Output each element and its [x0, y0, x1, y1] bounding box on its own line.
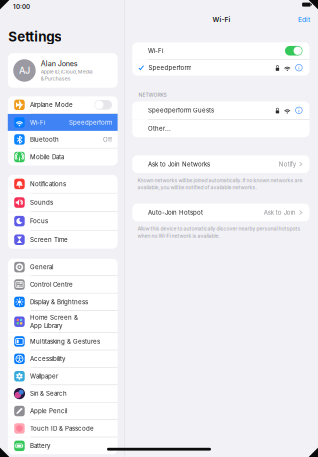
- button[interactable]: Wallpaper: [8, 368, 118, 385]
- button[interactable]: Apple Pencil: [8, 403, 118, 419]
- button[interactable]: Wi-Fi: [132, 42, 309, 59]
- button[interactable]: Focus: [8, 212, 118, 230]
- staticText: Wi-Fi: [148, 47, 163, 54]
- button[interactable]: Display & Brightness: [8, 293, 118, 310]
- button[interactable]: Battery: [8, 437, 118, 454]
- staticText: Mobile Data: [30, 153, 64, 161]
- button[interactable]: Screen Time: [8, 231, 118, 249]
- button[interactable]: Mobile Data: [8, 148, 118, 165]
- staticText: Focus: [30, 217, 48, 225]
- staticText: Other...: [148, 125, 171, 132]
- button[interactable]: AJ: [8, 53, 118, 88]
- button[interactable]: Wi-Fi: [8, 114, 118, 131]
- staticText: Edit: [298, 15, 310, 24]
- button[interactable]: Edit: [295, 12, 313, 27]
- staticText: Wi-Fi: [30, 119, 45, 126]
- staticText: Siri & Search: [30, 390, 67, 397]
- staticText: Home Screen &: [30, 314, 78, 321]
- button[interactable]: Home Screen &: [8, 311, 118, 332]
- staticText: Airplane Mode: [30, 101, 73, 108]
- staticText: Known networks will be joined automatica…: [138, 177, 303, 183]
- staticText: Display & Brightness: [30, 298, 88, 306]
- staticText: Alan Jones: [41, 59, 78, 68]
- staticText: App Library: [30, 322, 62, 329]
- button[interactable]: Speedperform: [132, 60, 309, 76]
- staticText: Speedperform: [69, 119, 112, 126]
- staticText: Wi-Fi: [213, 15, 231, 24]
- button[interactable]: Airplane Mode: [8, 96, 118, 113]
- staticText: Notifications: [30, 180, 66, 188]
- button[interactable]: Accessibility: [8, 350, 118, 367]
- button[interactable]: Auto-Join Hotspot: [132, 204, 309, 221]
- staticText: AJ: [19, 65, 30, 76]
- staticText: Apple Pencil: [30, 407, 67, 415]
- button[interactable]: Other...: [132, 120, 309, 137]
- staticText: Sounds: [30, 199, 53, 206]
- button[interactable]: Ask to Join Networks: [132, 155, 309, 173]
- staticText: & Purchases: [41, 75, 71, 82]
- button[interactable]: Control Centre: [8, 276, 118, 293]
- staticText: Bluetooth: [30, 136, 59, 143]
- staticText: Control Centre: [30, 281, 73, 288]
- staticText: NETWORKS: [139, 92, 167, 98]
- staticText: Multitasking & Gestures: [30, 338, 100, 345]
- staticText: Touch ID & Passcode: [30, 425, 94, 432]
- staticText: Screen Time: [30, 236, 68, 243]
- staticText: Accessibility: [30, 355, 65, 362]
- staticText: Allow this device to automatically disco…: [138, 226, 301, 232]
- staticText: Speedperform Guests: [148, 107, 214, 114]
- staticText: Notify: [279, 160, 296, 168]
- button[interactable]: Sounds: [8, 193, 118, 211]
- button[interactable]: General: [8, 259, 118, 275]
- staticText: Ask to Join: [264, 209, 296, 216]
- staticText: Settings: [8, 28, 61, 45]
- button[interactable]: Touch ID & Passcode: [8, 420, 118, 437]
- staticText: Apple ID, iCloud, Media: [41, 69, 93, 75]
- staticText: General: [30, 263, 53, 271]
- staticText: available, you will be notified of avail…: [138, 184, 257, 190]
- button[interactable]: Speedperform Guests: [132, 101, 309, 119]
- button[interactable]: Bluetooth: [8, 131, 118, 148]
- staticText: Wallpaper: [30, 372, 58, 380]
- staticText: Off: [103, 136, 112, 143]
- button[interactable]: Notifications: [8, 175, 118, 193]
- staticText: Battery: [30, 442, 50, 449]
- staticText: when no Wi-Fi network is available.: [138, 233, 220, 239]
- button[interactable]: Siri & Search: [8, 385, 118, 402]
- staticText: Auto-Join Hotspot: [148, 209, 203, 216]
- staticText: 10:00: [13, 3, 30, 10]
- staticText: Speedperform: [148, 64, 191, 71]
- button[interactable]: Multitasking & Gestures: [8, 333, 118, 350]
- staticText: Ask to Join Networks: [148, 160, 210, 168]
